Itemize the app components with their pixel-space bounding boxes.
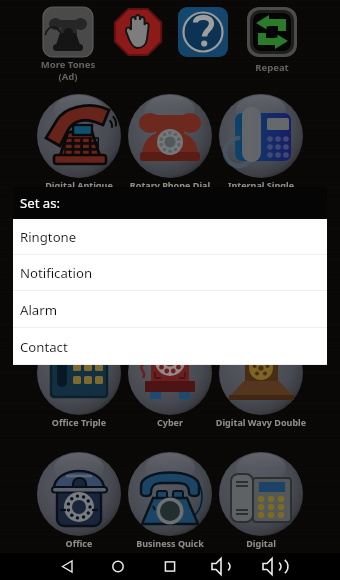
button[interactable]: Stop	[113, 8, 163, 58]
staticText: Set as:	[20, 194, 61, 212]
staticText: Alarm	[20, 301, 58, 319]
button[interactable]: Business Quick	[125, 449, 215, 553]
staticText: Ringtone	[20, 228, 77, 246]
staticText: Cyber	[120, 416, 220, 428]
staticText: Notification	[20, 264, 93, 282]
button[interactable]: Help	[178, 8, 228, 58]
button[interactable]: Notification	[13, 255, 327, 291]
button[interactable]: Office	[34, 449, 124, 553]
staticText: Business Quick	[120, 537, 220, 549]
staticText: Rotary	[29, 298, 129, 310]
button[interactable]: More Tones Ad	[43, 7, 93, 57]
staticText: Digital Antique	[29, 179, 129, 191]
staticText: Digital	[211, 537, 311, 549]
button[interactable]: Back	[55, 553, 81, 580]
button[interactable]: Internal Single	[216, 91, 306, 195]
staticText: Office	[29, 537, 129, 549]
staticText: Digital Wavy Double	[211, 416, 311, 428]
button[interactable]: Recents	[157, 553, 183, 580]
button[interactable]: Home	[105, 553, 131, 580]
staticText: Rotary Phone Dial	[120, 179, 220, 191]
button[interactable]: Digital Wavy Double	[216, 328, 306, 432]
button[interactable]: Contact	[13, 328, 327, 365]
button[interactable]: Rotary	[34, 210, 124, 314]
staticText: Internal Single	[211, 179, 311, 191]
button[interactable]: Volume down	[209, 553, 235, 580]
staticText: Office Triple	[29, 416, 129, 428]
button[interactable]: Ringtone	[13, 219, 327, 255]
button[interactable]: Office Triple	[34, 328, 124, 432]
staticText: Repeat	[232, 61, 312, 74]
button[interactable]: Internal	[125, 210, 215, 314]
button[interactable]: Digital	[216, 449, 306, 553]
button[interactable]: Volume up	[260, 553, 286, 580]
button[interactable]: Cyber	[125, 328, 215, 432]
button[interactable]: Alarm	[13, 291, 327, 328]
button[interactable]: Rotary Phone Dial	[125, 91, 215, 195]
staticText: More Tones (Ad)	[28, 58, 108, 82]
button[interactable]: Antique	[216, 210, 306, 314]
button[interactable]: Repeat	[247, 8, 297, 58]
button[interactable]: Digital Antique	[34, 91, 124, 195]
staticText: Contact	[20, 338, 68, 356]
